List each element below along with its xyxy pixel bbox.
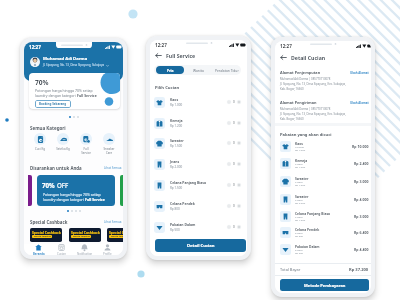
staticText: 12:27	[29, 44, 41, 50]
staticText: Rp 1.500	[295, 218, 306, 221]
button[interactable]: Decrease	[227, 121, 231, 125]
button[interactable]: Profile	[96, 244, 119, 255]
staticText: Profile	[103, 252, 112, 255]
button[interactable]: Cucian	[50, 244, 73, 255]
button[interactable]: Increase	[237, 204, 241, 208]
staticText: Kemeja	[295, 158, 308, 162]
staticText: Total Bayar	[280, 267, 301, 272]
staticText: 70%	[35, 78, 49, 87]
button[interactable]: Decrease	[227, 183, 231, 187]
button[interactable]: Ubah Alamat	[350, 101, 369, 105]
staticText: Wanita	[193, 68, 204, 72]
button[interactable]: 70%	[29, 73, 120, 109]
button[interactable]: Beranda	[27, 244, 50, 255]
staticText: Disarankan untuk Anda	[30, 165, 82, 171]
button[interactable]: Metode Pembayaran	[280, 279, 369, 291]
staticText: Celana Panjang Biasa	[170, 180, 207, 185]
button[interactable]: Pakaian Dalam	[154, 218, 241, 236]
staticText: Rp 4.000	[354, 197, 369, 202]
button[interactable]: Setrika Kg	[52, 133, 74, 151]
staticText: Jeans	[170, 159, 180, 164]
staticText: 0	[233, 225, 235, 229]
staticText: Muhamad Adi Darma | 085770710078	[280, 77, 331, 81]
button[interactable]: Increase	[237, 162, 241, 166]
button[interactable]: Decrease	[227, 100, 231, 104]
button[interactable]: Kaos	[154, 93, 241, 111]
button[interactable]: Increase	[237, 183, 241, 187]
staticText: OFF	[57, 181, 69, 189]
staticText: Jl. Sipayung, No. 13, Desa Sipayung, Suk…	[43, 63, 105, 67]
staticText: 12:27	[155, 42, 167, 48]
staticText: 0	[233, 100, 235, 104]
button[interactable]: Muhamad Adi Darma	[30, 56, 123, 67]
staticText: Rp 1.200	[295, 165, 306, 168]
staticText: 8 Item	[295, 248, 303, 251]
staticText: Waktu terbatas	[34, 235, 51, 238]
staticText: Special Cashback	[32, 230, 61, 235]
staticText: Semua Kategori	[30, 125, 66, 131]
button[interactable]: Decrease	[227, 204, 231, 208]
staticText: Cuci Kg	[29, 147, 51, 151]
button[interactable]: Special Cashback	[107, 228, 123, 242]
button[interactable]: Special Cashback	[30, 228, 62, 242]
staticText: 10 Item	[295, 145, 305, 148]
button[interactable]: Increase	[237, 141, 241, 145]
button[interactable]: Decrease	[227, 225, 231, 229]
button[interactable]: Celana Pendek	[154, 197, 241, 215]
button[interactable]: Full Service	[75, 133, 97, 155]
staticText: Rp 550	[295, 251, 304, 254]
staticText: Rp 500	[170, 228, 180, 232]
button[interactable]: Pria	[156, 66, 184, 74]
staticText: Muhamad Adi Darma | 085770710078	[280, 107, 331, 111]
staticText: Rp 800	[295, 234, 304, 237]
staticText: Sweater	[295, 194, 309, 198]
button[interactable]: Increase	[237, 100, 241, 104]
staticText: Rp 10.000	[352, 144, 369, 149]
staticText: 2 Item	[295, 162, 303, 165]
staticText: Special Cashback	[71, 230, 100, 235]
staticText: Pilih Cucian	[155, 85, 180, 91]
button[interactable]: Lihat Semua	[104, 220, 122, 224]
button[interactable]: Increase	[237, 121, 241, 125]
button[interactable]: Decrease	[227, 162, 231, 166]
staticText: Celana Pendek	[295, 227, 320, 231]
staticText: Rp 3.000	[354, 214, 369, 219]
staticText: 2 Item	[295, 215, 303, 218]
staticText: Rp 1.500	[170, 144, 183, 148]
staticText: Cucian	[57, 252, 66, 255]
staticText: 0	[233, 162, 235, 166]
staticText: Ubah Alamat	[350, 101, 369, 105]
button[interactable]: Lihat Semua	[104, 166, 122, 170]
staticText: Kaos	[295, 141, 303, 145]
button[interactable]: 70%	[37, 175, 115, 206]
button[interactable]: Decrease	[227, 141, 231, 145]
button[interactable]: Ubah Alamat	[350, 71, 369, 75]
button[interactable]: Booking Sekarang	[35, 100, 71, 108]
staticText: Waktu terbatas	[73, 235, 90, 238]
staticText: 2 Item	[295, 198, 303, 201]
staticText: Rp 1.500	[295, 183, 306, 186]
staticText: 70%	[42, 181, 55, 189]
staticText: Muhamad Adi Darma	[43, 56, 88, 62]
button[interactable]: Peralatan Tidur	[212, 66, 241, 74]
button[interactable]: Cuci Kg	[29, 133, 51, 151]
button[interactable]: Sneaker Care	[98, 133, 120, 155]
staticText: Sweater	[295, 176, 309, 180]
button[interactable]: Celana Panjang Biasa	[154, 176, 241, 194]
staticText: Pakaian Dalam	[295, 244, 320, 248]
button[interactable]: Back	[280, 54, 326, 61]
staticText: Detail Cucian	[187, 243, 215, 249]
button[interactable]: Kemeja	[154, 114, 241, 132]
button[interactable]: Special Cashback	[69, 228, 101, 242]
staticText: laundry dengan kategori	[35, 93, 77, 98]
button[interactable]: Notification	[73, 244, 96, 255]
staticText: Setrika Kg	[52, 147, 74, 151]
other: Back	[280, 54, 287, 61]
button[interactable]: Jeans	[154, 155, 241, 173]
button[interactable]: Back	[155, 52, 196, 59]
button[interactable]: Increase	[237, 225, 241, 229]
staticText: Rp 3.000	[354, 179, 369, 184]
button[interactable]: Detail Cucian	[155, 239, 246, 252]
button[interactable]: Wanita	[186, 66, 211, 74]
button[interactable]: Sweater	[154, 134, 241, 152]
